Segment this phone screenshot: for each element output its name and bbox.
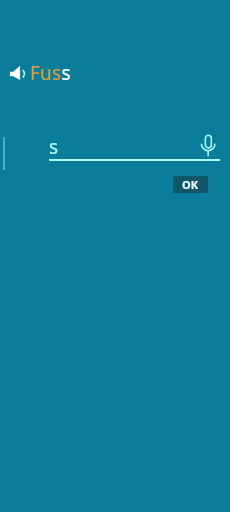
staticText: OK [182, 177, 199, 192]
staticText: s [49, 134, 59, 160]
button[interactable]: Fuss [8, 59, 74, 83]
button[interactable]: Voice search [198, 131, 219, 159]
staticText: Fuss [30, 60, 71, 84]
button[interactable]: Search field [46, 132, 194, 161]
button[interactable]: OK [173, 176, 208, 193]
